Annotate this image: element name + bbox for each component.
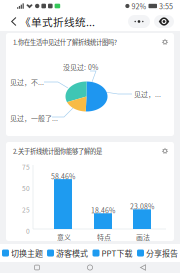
button[interactable]: 游客模式	[45, 244, 90, 262]
button[interactable]: Chart options	[159, 36, 174, 48]
staticText: 75	[22, 162, 30, 172]
staticText: PPT下载	[101, 247, 132, 259]
button[interactable]: Back	[127, 262, 159, 273]
staticText: 3:55	[159, 1, 173, 11]
staticText: 50	[22, 183, 30, 193]
button[interactable]: PPT下载	[90, 244, 135, 262]
staticText: 见过，...	[134, 89, 161, 99]
button[interactable]: Preview	[150, 15, 180, 28]
button[interactable]: More options	[128, 15, 150, 28]
button[interactable]: Recents	[21, 262, 53, 273]
button[interactable]: 切换主题	[0, 244, 45, 262]
staticText: 没见过: 0%	[63, 62, 98, 72]
staticText: 见过，一般了...	[10, 113, 58, 123]
button[interactable]: Back	[0, 12, 20, 31]
button[interactable]: Home	[74, 262, 106, 273]
staticText: 《单式折线统...	[20, 14, 95, 29]
staticText: 0	[26, 226, 30, 236]
staticText: 画法	[136, 232, 150, 242]
staticText: 2.关于折线统计图你能够了解的是	[13, 146, 102, 156]
staticText: 游客模式	[56, 247, 88, 259]
staticText: 意义	[57, 232, 71, 242]
staticText: 见过，不...	[10, 77, 44, 87]
button[interactable]: 分享报告	[135, 244, 180, 262]
staticText: 特点	[97, 232, 111, 242]
staticText: 23.08%	[130, 201, 154, 211]
staticText: 92%	[131, 1, 146, 11]
staticText: 18.46%	[91, 205, 115, 215]
staticText: 切换主题	[11, 247, 43, 259]
staticText: 58.46%	[51, 171, 75, 181]
staticText: 分享报告	[146, 247, 178, 259]
staticText: 1.你在生活中见过什了解折线统计图吗?	[13, 37, 117, 47]
staticText: 25	[22, 205, 30, 214]
button[interactable]: Chart options	[159, 145, 174, 157]
